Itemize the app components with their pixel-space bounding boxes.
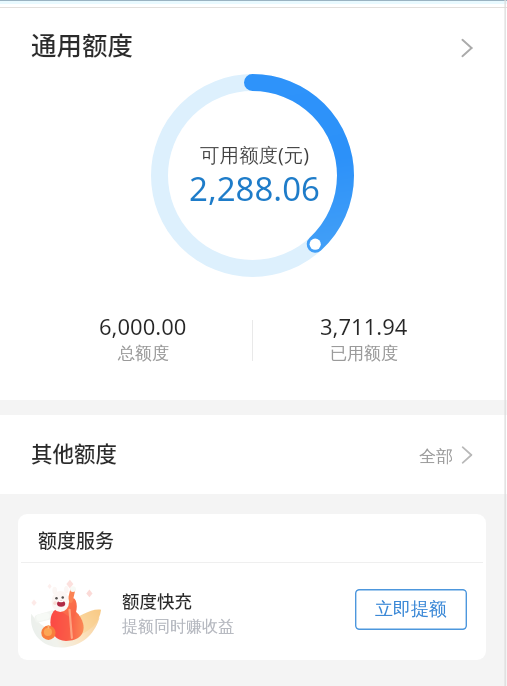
- staticText: 立即提额: [375, 598, 447, 621]
- staticText: 6,000.00: [99, 311, 187, 341]
- staticText: 总额度: [118, 343, 169, 364]
- staticText: 已用额度: [330, 343, 398, 364]
- other: 查看通用额度详情: [452, 33, 482, 63]
- button[interactable]: 额度快充: [18, 563, 486, 660]
- button[interactable]: 立即提额: [355, 589, 467, 630]
- staticText: 3,711.94: [320, 311, 408, 341]
- staticText: 提额同时赚收益: [122, 617, 234, 637]
- staticText: 可用额度(元): [200, 141, 310, 168]
- staticText: 2,288.06: [189, 166, 320, 211]
- staticText: 额度服务: [38, 526, 115, 554]
- button[interactable]: 其他额度: [0, 415, 507, 494]
- staticText: 通用额度: [31, 25, 134, 62]
- staticText: 全部: [419, 446, 453, 467]
- staticText: 其他额度: [31, 437, 118, 468]
- staticText: 额度快充: [122, 588, 192, 613]
- button[interactable]: 通用额度: [0, 0, 507, 74]
